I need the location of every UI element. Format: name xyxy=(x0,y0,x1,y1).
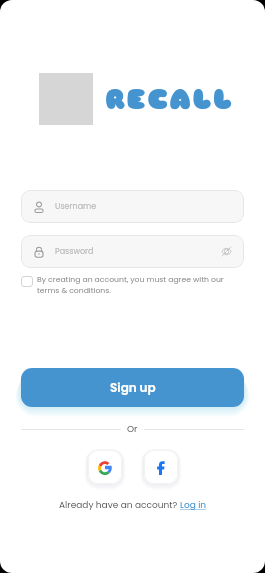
button[interactable]: Username xyxy=(21,190,244,223)
button[interactable]: Log in xyxy=(180,499,207,512)
staticText: By creating an account, you must agree w… xyxy=(37,274,244,295)
button[interactable]: Show password xyxy=(220,245,233,258)
button[interactable]: Password xyxy=(21,235,244,268)
button[interactable]: Sign up with Google xyxy=(88,450,122,484)
button[interactable]: By creating an account, you must agree w… xyxy=(21,274,244,295)
staticText: RECALL xyxy=(105,81,234,117)
staticText: Already have an account? xyxy=(59,499,180,512)
staticText: Password xyxy=(55,246,220,257)
staticText: Username xyxy=(55,201,233,212)
staticText: Sign up xyxy=(110,379,156,396)
staticText: Or xyxy=(127,423,138,436)
button[interactable]: Sign up with Facebook xyxy=(144,450,178,484)
button[interactable]: Sign up xyxy=(21,368,244,407)
